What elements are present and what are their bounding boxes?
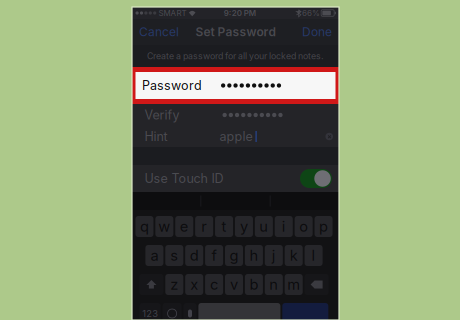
staticText: q xyxy=(140,218,149,235)
staticText: u xyxy=(259,218,268,235)
button[interactable]: Hint xyxy=(132,126,339,147)
staticText: 9:20 PM xyxy=(224,8,256,18)
staticText: b xyxy=(249,276,258,293)
staticText: Hint xyxy=(144,129,167,144)
staticText: p xyxy=(319,218,328,235)
staticText: n xyxy=(269,276,278,293)
staticText: g xyxy=(229,247,238,264)
button[interactable]: Verify xyxy=(132,104,339,126)
staticText: h xyxy=(249,247,258,264)
staticText: Verify xyxy=(144,107,179,123)
staticText: d xyxy=(190,247,199,264)
staticText: i xyxy=(282,218,286,235)
staticText: w xyxy=(158,218,170,235)
button[interactable]: Use Touch ID xyxy=(132,165,339,192)
staticText: Cancel xyxy=(139,25,179,39)
staticText: Use Touch ID xyxy=(144,171,223,186)
staticText: a xyxy=(150,247,158,264)
staticText: SMART xyxy=(158,8,186,18)
button[interactable]: Done xyxy=(290,19,339,45)
staticText: k xyxy=(290,247,298,264)
staticText: x xyxy=(190,276,198,293)
staticText: z xyxy=(170,276,178,293)
staticText: o xyxy=(299,218,308,235)
staticText: t xyxy=(221,218,226,235)
staticText: l xyxy=(312,247,316,264)
staticText: Create a password for all your locked no… xyxy=(147,51,324,61)
staticText: c xyxy=(210,276,218,293)
staticText: s xyxy=(170,247,178,264)
staticText: apple xyxy=(219,129,252,144)
staticText: 66% xyxy=(302,8,320,18)
staticText: Set Password xyxy=(195,25,275,39)
staticText: y xyxy=(240,218,248,235)
staticText: m xyxy=(287,276,300,293)
staticText: v xyxy=(230,276,238,293)
staticText: Done xyxy=(302,25,332,39)
staticText: f xyxy=(212,247,217,264)
staticText: e xyxy=(180,218,189,235)
button[interactable]: Password xyxy=(132,67,339,104)
staticText: Password xyxy=(142,78,202,93)
staticText: j xyxy=(272,247,276,264)
staticText: 123 xyxy=(142,308,158,319)
staticText: r xyxy=(201,218,207,235)
button[interactable]: Cancel xyxy=(132,19,191,45)
